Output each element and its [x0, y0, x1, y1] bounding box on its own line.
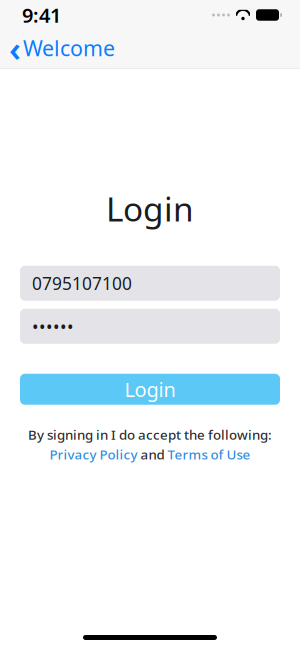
- button[interactable]: Login: [20, 374, 280, 405]
- staticText: ‹: [9, 25, 21, 71]
- staticText: Login: [106, 186, 194, 231]
- staticText: and: [140, 445, 164, 463]
- staticText: By signing in I do accept the following:: [28, 426, 272, 443]
- staticText: Terms of Use: [167, 445, 250, 463]
- button[interactable]: ••••••: [20, 309, 280, 344]
- staticText: ••••••: [32, 315, 74, 338]
- button[interactable]: ‹: [0, 29, 127, 69]
- staticText: 9:41: [22, 2, 61, 28]
- button[interactable]: 0795107100: [20, 266, 280, 301]
- staticText: 0795107100: [32, 272, 132, 295]
- staticText: Privacy Policy: [49, 445, 137, 463]
- staticText: Welcome: [23, 34, 115, 62]
- staticText: Login: [124, 376, 175, 403]
- button[interactable]: Privacy Policy: [49, 445, 137, 463]
- button[interactable]: Terms of Use: [167, 445, 250, 463]
